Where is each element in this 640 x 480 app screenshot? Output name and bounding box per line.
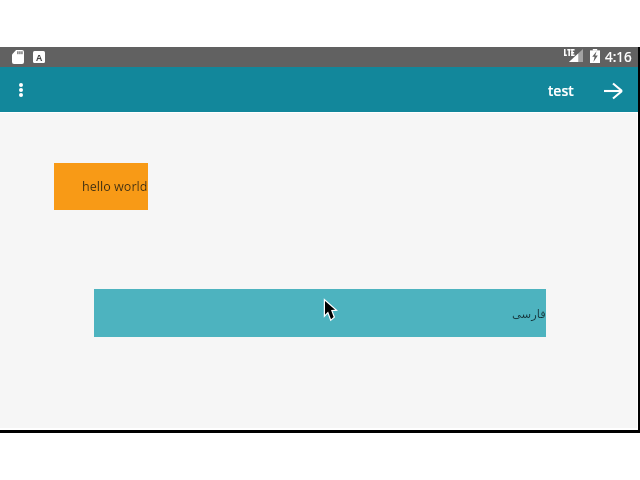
button[interactable]: فارسی <box>94 289 546 337</box>
button[interactable]: Forward <box>593 71 633 111</box>
staticText: test <box>548 81 574 100</box>
button[interactable]: hello world <box>54 163 148 210</box>
staticText: فارسی <box>512 307 546 320</box>
button[interactable]: More options <box>0 67 42 112</box>
staticText: hello world <box>82 178 148 195</box>
staticText: 4:16 <box>605 48 632 66</box>
button[interactable]: test <box>541 68 581 113</box>
staticText: A <box>36 51 43 63</box>
